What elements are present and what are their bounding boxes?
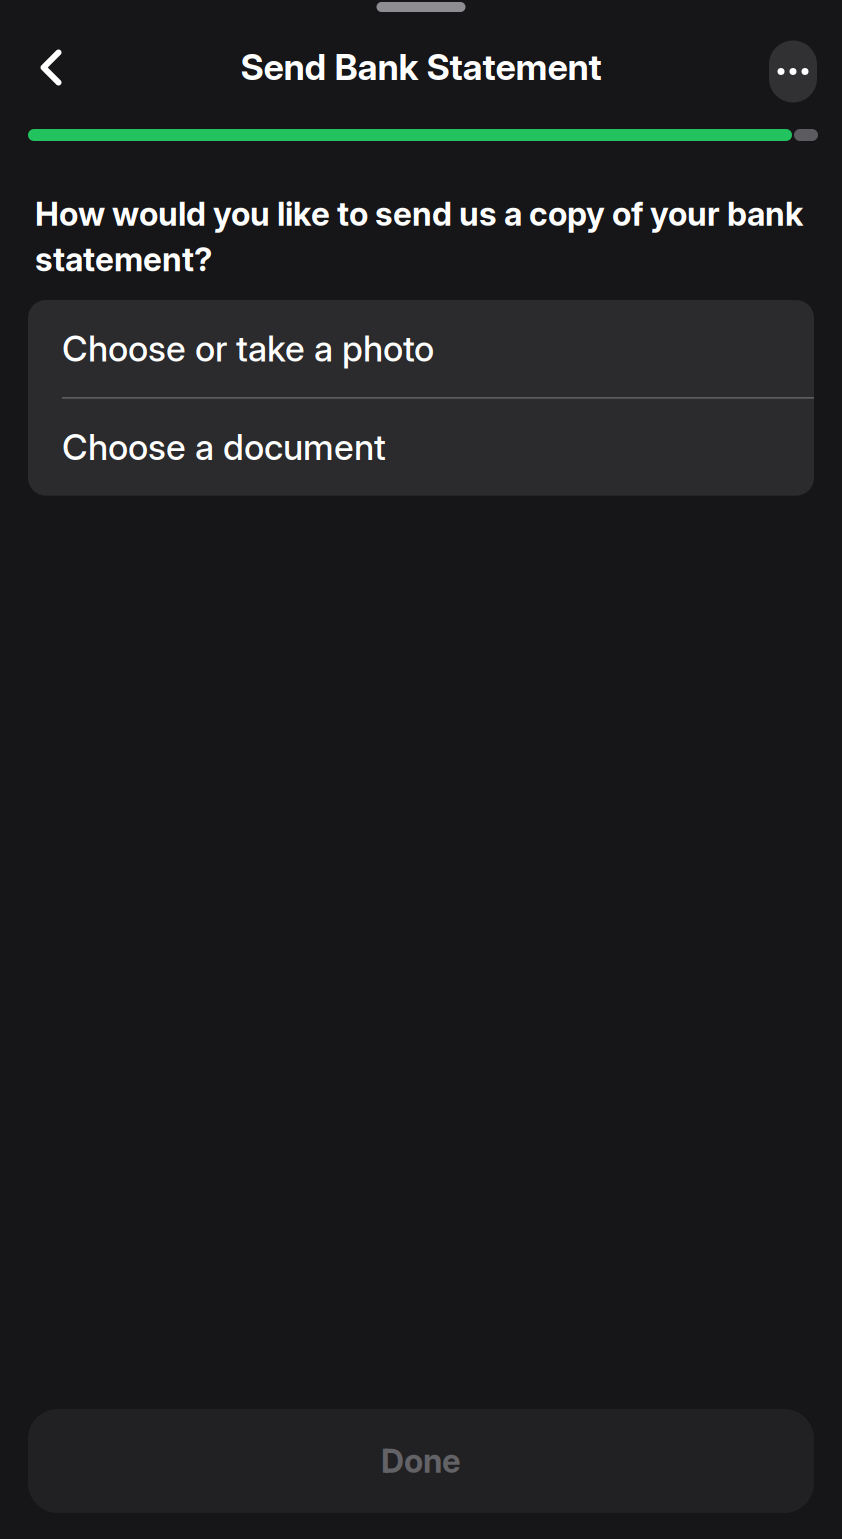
staticText: Send Bank Statement xyxy=(240,45,601,89)
staticText: Choose or take a photo xyxy=(62,327,434,370)
staticText: Choose a document xyxy=(62,426,386,469)
button[interactable]: Choose a document xyxy=(28,399,814,496)
staticText: How would you like to send us a copy of … xyxy=(35,194,803,279)
staticText: Done xyxy=(381,1441,461,1480)
button[interactable]: More options xyxy=(769,40,817,102)
button[interactable]: Choose or take a photo xyxy=(28,300,814,397)
button[interactable]: Done xyxy=(28,1409,814,1513)
button[interactable]: Back xyxy=(24,40,78,102)
